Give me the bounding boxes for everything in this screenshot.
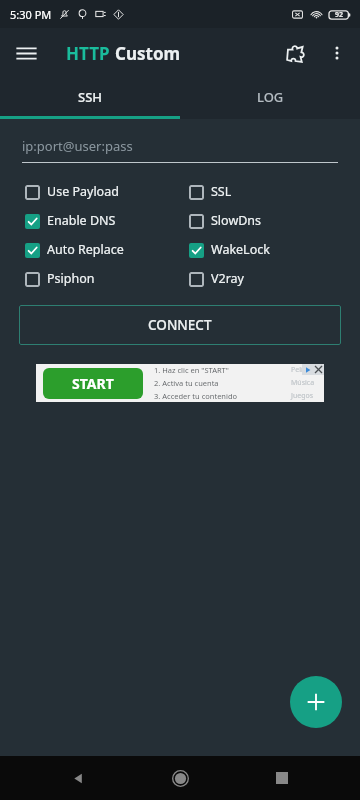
button[interactable]: More options bbox=[316, 32, 358, 74]
staticText: SlowDns bbox=[211, 212, 262, 229]
button[interactable]: Psiphon bbox=[24, 264, 180, 293]
button[interactable]: WakeLock bbox=[188, 235, 360, 264]
button[interactable]: Back bbox=[54, 756, 102, 800]
staticText: SSH bbox=[78, 88, 103, 106]
staticText: 3. Acceder tu contenido bbox=[154, 391, 238, 401]
staticText: Música bbox=[291, 378, 315, 388]
staticText: 2. Activa tu cuenta bbox=[154, 378, 219, 388]
button[interactable]: Add configuration bbox=[290, 676, 342, 728]
button[interactable]: Close ad bbox=[313, 364, 324, 375]
staticText: 5:30 PM bbox=[10, 7, 52, 22]
button[interactable]: ip:port@user:pass bbox=[22, 137, 338, 163]
button[interactable]: Ad choices bbox=[302, 364, 313, 375]
button[interactable]: Extensions bbox=[274, 32, 316, 74]
staticText: Películas bbox=[291, 365, 320, 375]
button[interactable]: SlowDns bbox=[188, 206, 360, 235]
button[interactable]: V2ray bbox=[188, 264, 360, 293]
button[interactable]: SSH bbox=[0, 78, 180, 116]
staticText: Enable DNS bbox=[47, 212, 116, 229]
button[interactable]: Home bbox=[156, 756, 204, 800]
staticText: Use Payload bbox=[47, 183, 119, 200]
button[interactable]: Recent apps bbox=[258, 756, 306, 800]
staticText: Custom bbox=[115, 42, 181, 65]
staticText: ip:port@user:pass bbox=[22, 137, 133, 155]
button[interactable]: Auto Replace bbox=[24, 235, 180, 264]
button[interactable]: SSL bbox=[188, 177, 360, 206]
staticText: 92 bbox=[335, 10, 344, 20]
button[interactable]: LOG bbox=[180, 78, 360, 116]
button[interactable]: START bbox=[36, 364, 324, 402]
staticText: SSL bbox=[211, 183, 232, 200]
staticText: Auto Replace bbox=[47, 241, 124, 258]
button[interactable]: Open navigation menu bbox=[6, 33, 46, 73]
staticText: 1. Haz clic en "START" bbox=[154, 365, 229, 375]
button[interactable]: Use Payload bbox=[24, 177, 180, 206]
staticText: Juegos bbox=[291, 391, 314, 401]
staticText: HTTP bbox=[66, 42, 110, 65]
staticText: WakeLock bbox=[211, 241, 270, 258]
button[interactable]: Enable DNS bbox=[24, 206, 180, 235]
staticText: Psiphon bbox=[47, 270, 95, 287]
staticText: START bbox=[72, 374, 114, 393]
staticText: CONNECT bbox=[148, 316, 212, 334]
staticText: LOG bbox=[257, 88, 284, 106]
button[interactable]: CONNECT bbox=[19, 305, 341, 345]
staticText: V2ray bbox=[211, 270, 244, 287]
